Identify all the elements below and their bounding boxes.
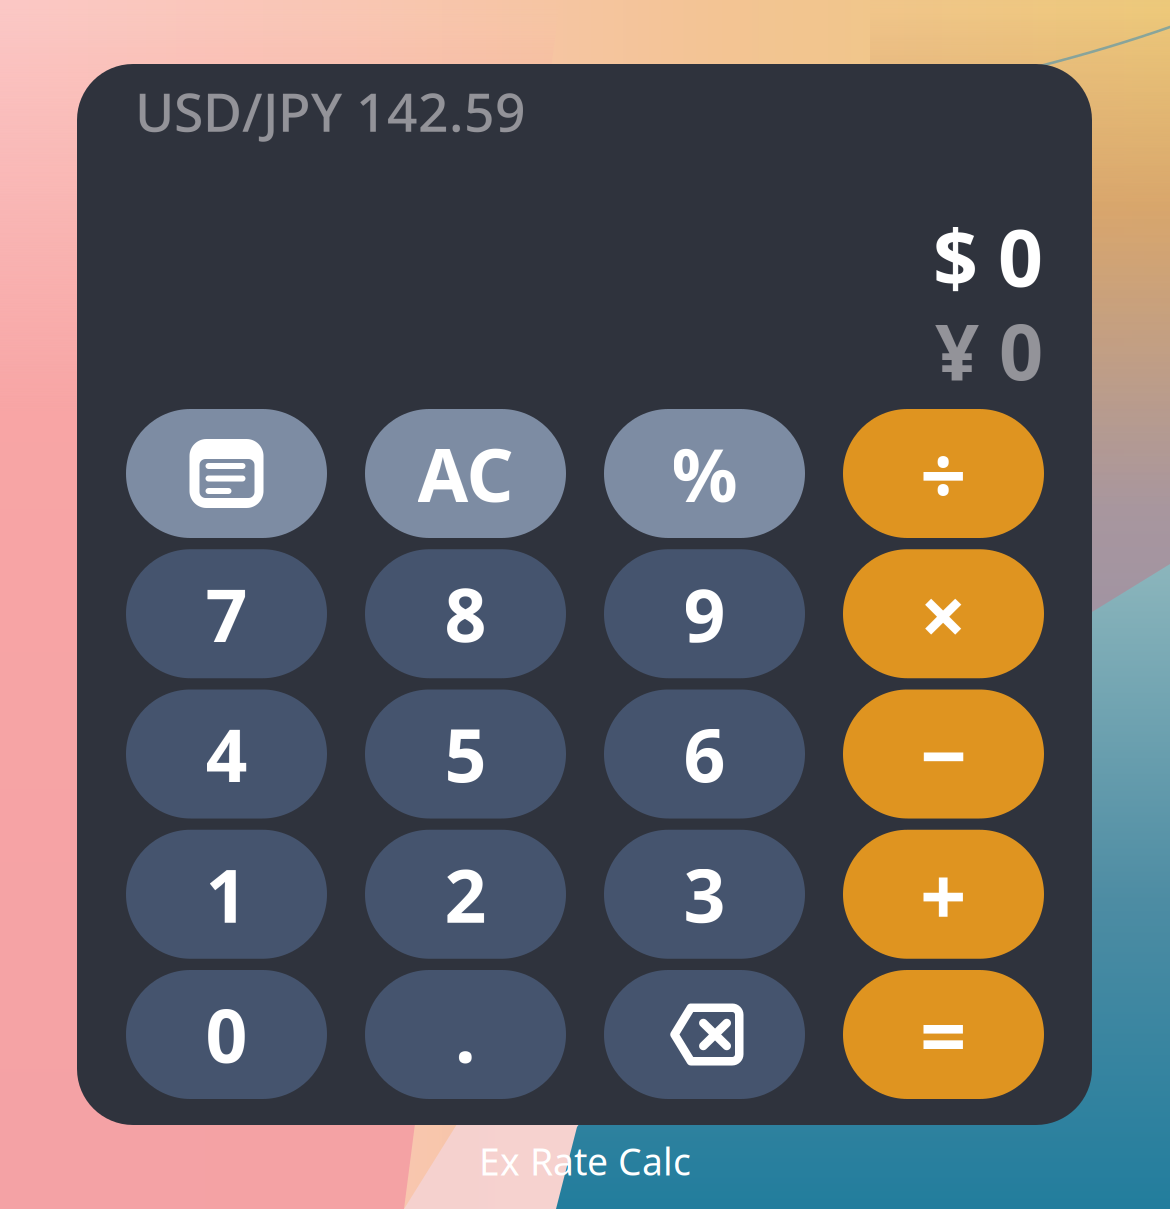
staticText: = <box>920 980 967 1088</box>
staticText: 4 <box>205 705 247 803</box>
button[interactable]: × <box>843 549 1044 678</box>
staticText: ÷ <box>920 419 967 527</box>
button[interactable]: % <box>604 409 805 538</box>
button[interactable]: 8 <box>365 549 566 678</box>
button[interactable]: Ex Rate Calc <box>479 1136 691 1186</box>
staticText: Ex Rate Calc <box>479 1136 691 1186</box>
staticText: 3 <box>683 846 725 943</box>
staticText: × <box>920 560 967 668</box>
button[interactable]: 3 <box>604 830 805 959</box>
button[interactable]: AC <box>365 409 566 538</box>
button[interactable]: Notes <box>126 409 327 538</box>
button[interactable]: = <box>843 970 1044 1099</box>
button[interactable]: + <box>843 830 1044 959</box>
button[interactable]: 4 <box>126 689 327 818</box>
button[interactable]: 6 <box>604 689 805 818</box>
staticText: 7 <box>205 565 247 662</box>
button[interactable]: 7 <box>126 549 327 678</box>
staticText: 2 <box>444 846 486 943</box>
staticText: 6 <box>683 705 725 803</box>
button[interactable]: Delete <box>604 970 805 1099</box>
staticText: 9 <box>683 565 725 662</box>
button[interactable]: 2 <box>365 830 566 959</box>
staticText: . <box>455 986 476 1083</box>
staticText: ¥ 0 <box>935 299 1043 401</box>
staticText: USD/JPY 142.59 <box>135 76 526 146</box>
button[interactable]: − <box>843 689 1044 818</box>
staticText: 8 <box>444 565 486 662</box>
button[interactable]: . <box>365 970 566 1099</box>
button[interactable]: ÷ <box>843 409 1044 538</box>
button[interactable]: 1 <box>126 830 327 959</box>
staticText: − <box>920 700 967 808</box>
staticText: % <box>671 425 737 522</box>
button[interactable]: 0 <box>126 970 327 1099</box>
staticText: AC <box>417 425 513 522</box>
staticText: $ 0 <box>933 204 1043 308</box>
staticText: 1 <box>205 846 247 943</box>
staticText: + <box>920 840 967 948</box>
button[interactable]: 5 <box>365 689 566 818</box>
staticText: 0 <box>205 986 247 1083</box>
button[interactable]: 9 <box>604 549 805 678</box>
staticText: 5 <box>444 705 486 803</box>
